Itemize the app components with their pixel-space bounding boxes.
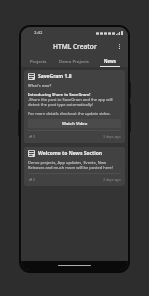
staticText: Introducing Share to SaveGram! [28, 92, 91, 97]
staticText: HTML Creator [53, 42, 97, 51]
staticText: Watch Video [62, 121, 88, 127]
staticText: For more details checkout the update vid… [28, 111, 111, 116]
button[interactable]: More options [113, 40, 126, 53]
staticText: What's new? [28, 83, 52, 88]
button[interactable]: Watch Video [28, 119, 121, 128]
staticText: 0 [33, 134, 36, 139]
staticText: 2:42 [34, 30, 43, 36]
button[interactable]: Likes [28, 176, 37, 183]
staticText: Projects [30, 58, 47, 64]
staticText: 0 [33, 177, 36, 182]
button[interactable]: Welcome to News Section [24, 147, 125, 186]
staticText: Welcome to News Section [38, 150, 103, 157]
button[interactable]: Likes [28, 133, 37, 140]
staticText: 3 days ago [103, 177, 121, 182]
button[interactable]: Demo Projects [56, 55, 92, 66]
button[interactable]: SaveGram 1.8 [24, 70, 125, 143]
staticText: -Share the post to SaveGram and the app … [28, 97, 121, 107]
staticText: SaveGram 1.8 [38, 73, 72, 80]
staticText: Demo projects, App updates, Events, New … [28, 160, 121, 170]
staticText: News [104, 58, 116, 64]
staticText: 3 days ago [103, 134, 121, 139]
button[interactable]: Projects [21, 55, 56, 66]
button[interactable]: News [92, 55, 128, 66]
staticText: Demo Projects [59, 58, 89, 64]
